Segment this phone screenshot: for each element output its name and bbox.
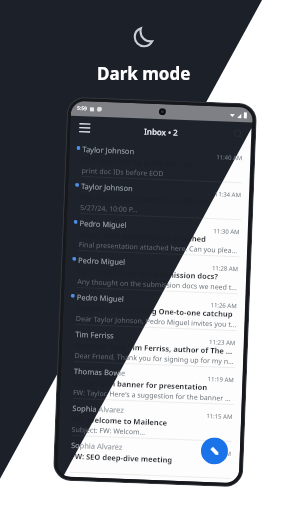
button[interactable]: Pedro Miguel xyxy=(63,287,246,331)
button[interactable]: Pedro Miguel xyxy=(64,250,247,294)
staticText: FW: Welcome to Mailence xyxy=(72,414,168,428)
button[interactable]: Sophia Alvarez xyxy=(57,435,240,479)
button[interactable]: Search xyxy=(231,127,245,141)
staticText: Bonuses from Tim Ferriss, author of The … xyxy=(75,340,236,356)
staticText: FW: Reminder: Brainstorm Off-site xyxy=(80,192,209,207)
staticText: Pedro Miguel xyxy=(77,292,124,304)
staticText: 11:11 AM xyxy=(205,449,232,458)
staticText: Tim Ferriss xyxy=(75,329,114,340)
button[interactable]: Sophia Alvarez xyxy=(58,398,242,442)
staticText: 5/27/24, 10:00 P… xyxy=(80,203,138,215)
button[interactable]: Compose xyxy=(200,437,228,465)
staticText: Dark mode xyxy=(97,62,191,85)
staticText: 5:59 xyxy=(77,105,87,112)
other: Dark mode xyxy=(129,22,159,52)
staticText: Taylor Johnson xyxy=(81,181,133,193)
staticText: Thomas Bowie xyxy=(74,366,126,378)
staticText: Pedro Miguel xyxy=(79,218,127,230)
staticText: FW: Taylor, Here's a suggestion for the … xyxy=(73,388,234,404)
staticText: Sophia Alvarez xyxy=(71,440,123,452)
staticText: 11:34 AM xyxy=(215,190,242,199)
staticText: 11:28 AM xyxy=(212,264,239,273)
staticText: 11:30 AM xyxy=(213,227,240,236)
button[interactable]: Menu xyxy=(77,121,91,135)
staticText: Taylor Johnson xyxy=(82,144,134,156)
staticText: print doc IDs before EOD xyxy=(81,166,164,179)
button[interactable]: Taylor Johnson xyxy=(68,140,252,184)
staticText: Dear Friend, Thank you for signing up fo… xyxy=(74,351,236,367)
staticText: RE: thoughts on the submission docs? xyxy=(78,266,219,281)
staticText: FW: SEO deep-dive meeting xyxy=(70,451,173,465)
staticText: 11:15 AM xyxy=(206,412,233,421)
staticText: 11:40 AM xyxy=(216,153,243,162)
staticText: Suggestion banner for presentation xyxy=(73,377,208,392)
staticText: 11:19 AM xyxy=(207,375,235,384)
staticText: Final presentation attached here. Can yo… xyxy=(79,240,240,256)
staticText: Dear Taylor Johnson, Pedro Miguel invite… xyxy=(76,314,237,330)
button[interactable]: Thomas Bowie xyxy=(60,361,243,405)
button[interactable]: Tim Ferriss xyxy=(61,324,245,368)
staticText: Sophia Alvarez xyxy=(72,403,125,415)
button[interactable]: Taylor Johnson xyxy=(67,177,250,221)
staticText: Pedro Miguel xyxy=(78,255,125,267)
staticText: 11:23 AM xyxy=(209,338,236,347)
staticText: Any thought on the submission docs we ne… xyxy=(77,277,238,293)
button[interactable]: Pedro Miguel xyxy=(65,214,249,258)
staticText: Subject: FW: Welcom… xyxy=(71,425,146,438)
staticText: Invitation to meeting One-to-one catchup xyxy=(76,303,233,319)
staticText: Inbox • 2 xyxy=(144,125,178,138)
staticText: 11:26 AM xyxy=(210,301,238,310)
staticText: RE:RE: final presentation attached xyxy=(79,229,206,244)
